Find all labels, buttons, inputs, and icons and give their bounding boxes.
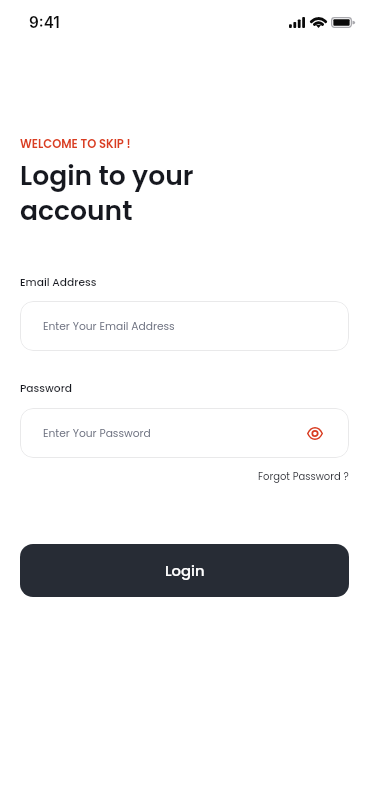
other: Wi-Fi bbox=[311, 17, 326, 28]
button[interactable]: Forgot Password ? bbox=[258, 469, 349, 483]
button[interactable]: Login bbox=[20, 544, 349, 597]
staticText: Password bbox=[20, 381, 73, 396]
button[interactable]: Show password bbox=[307, 428, 323, 439]
button[interactable]: Enter Your Password bbox=[20, 408, 349, 458]
staticText: Enter Your Password bbox=[43, 426, 151, 441]
other: Cellular signal bbox=[289, 17, 305, 28]
staticText: WELCOME TO SKIP ! bbox=[20, 136, 131, 152]
staticText: Login bbox=[165, 560, 205, 581]
staticText: 9:41 bbox=[29, 13, 60, 32]
other: Battery bbox=[331, 17, 355, 28]
staticText: Email Address bbox=[20, 275, 97, 290]
staticText: Login to your account bbox=[20, 157, 194, 229]
staticText: Enter Your Email Address bbox=[43, 319, 175, 334]
button[interactable]: Enter Your Email Address bbox=[20, 301, 349, 351]
